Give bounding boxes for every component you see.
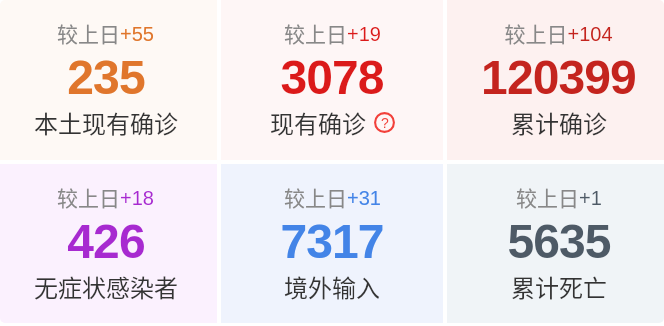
- staticText: 426: [67, 215, 145, 269]
- button[interactable]: More info: [374, 112, 395, 133]
- staticText: 境外输入: [284, 269, 380, 304]
- staticText: 累计死亡: [511, 269, 607, 304]
- staticText: 累计确诊: [511, 105, 607, 140]
- button[interactable]: 较上日+55: [0, 0, 217, 160]
- staticText: 无症状感染者: [34, 269, 178, 304]
- staticText: 7317: [280, 215, 384, 269]
- button[interactable]: 较上日+19: [221, 0, 443, 160]
- button[interactable]: 较上日+104: [447, 0, 664, 160]
- staticText: 本土现有确诊: [34, 105, 178, 140]
- button[interactable]: 较上日+1: [447, 164, 664, 323]
- staticText: 较上日+18: [57, 182, 154, 212]
- staticText: 较上日+19: [284, 18, 381, 48]
- staticText: 5635: [507, 215, 611, 269]
- button[interactable]: 较上日+31: [221, 164, 443, 323]
- staticText: 较上日+55: [57, 18, 154, 48]
- staticText: ?: [381, 115, 389, 131]
- staticText: 现有确诊: [270, 105, 366, 140]
- staticText: 235: [67, 51, 145, 105]
- button[interactable]: 较上日+18: [0, 164, 217, 323]
- staticText: 较上日+31: [284, 182, 381, 212]
- staticText: 较上日+104: [504, 18, 613, 48]
- staticText: 较上日+1: [516, 182, 602, 212]
- staticText: 120399: [481, 51, 636, 105]
- staticText: 3078: [280, 51, 384, 105]
